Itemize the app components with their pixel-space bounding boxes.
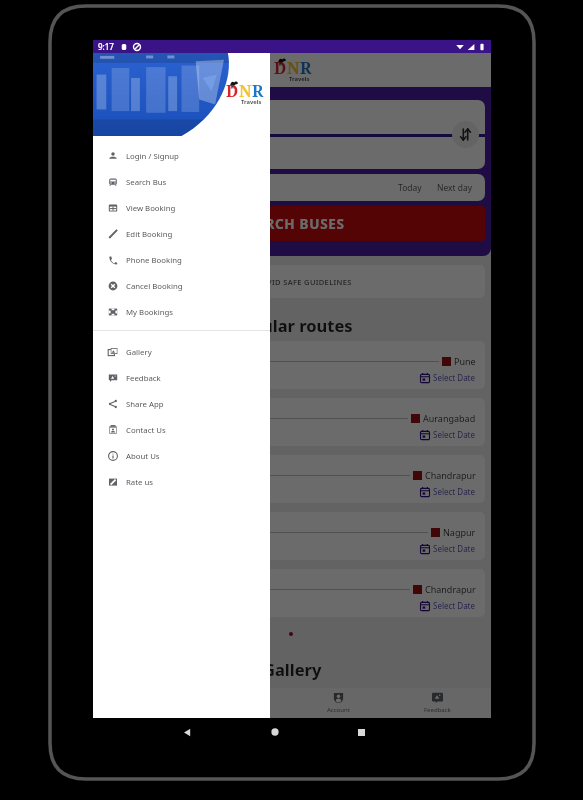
button[interactable]: About Us [93,443,270,469]
staticText: Gallery [126,347,152,358]
staticText: Chandrapur [425,583,476,595]
button[interactable]: Rate us [93,469,270,495]
staticText: Contact Us [126,425,166,436]
button[interactable]: Contact Us [93,417,270,443]
button[interactable]: Nanded [99,398,485,446]
button[interactable]: Back [183,728,192,737]
staticText: To [111,146,122,160]
staticText: Popular routes [231,314,353,336]
staticText: COVID SAFE GUIDELINES [256,277,352,287]
staticText: N [239,80,252,102]
button[interactable]: View Booking [93,195,270,221]
staticText: Phone Booking [126,255,182,266]
staticText: Account [327,706,350,714]
staticText: Edit Booking [126,229,173,240]
button[interactable]: Nanded [99,455,485,503]
button[interactable]: My Bookings [93,299,270,325]
staticText: Login / Signup [126,151,179,162]
button[interactable]: Swap source and destination [452,121,479,148]
staticText: Chandrapur [425,469,476,481]
button[interactable]: Gallery [93,339,270,365]
staticText: Aurangabad [423,412,476,424]
button[interactable]: Login / Signup [93,143,270,169]
staticText: Select Date [433,600,476,611]
staticText: Feedback [424,706,451,714]
staticText: Nanded [121,469,155,481]
button[interactable]: Share App [93,391,270,417]
staticText: SEARCH BUSES [239,215,345,233]
staticText: Travels [289,75,310,83]
staticText: Next day [437,182,473,194]
button[interactable] [93,53,491,718]
staticText: Select Date [433,372,476,383]
button[interactable]: SEARCH BUSES [99,206,485,241]
button[interactable]: Nanded [99,512,485,560]
button[interactable]: Nanded [99,341,485,389]
staticText: Cancel Booking [126,281,183,292]
staticText: D [274,57,287,79]
button[interactable]: Phone Booking [93,247,270,273]
staticText: Gallery [263,658,322,680]
button[interactable]: Edit Booking [93,221,270,247]
staticText: Nanded [121,355,155,367]
staticText: Select Date [433,486,476,497]
staticText: Travels [241,98,262,106]
staticText: Feedback [126,373,161,384]
button[interactable]: Home [271,728,279,736]
staticText: Rate us [126,477,154,488]
staticText: Search Bus [126,177,167,188]
staticText: R [252,80,262,102]
button[interactable]: Offers [192,688,292,718]
staticText: R [300,57,310,79]
button[interactable]: COVID SAFE GUIDELINES [99,265,485,298]
button[interactable]: Search Bus [93,169,270,195]
staticText: View Booking [126,203,176,214]
button[interactable]: Today [394,179,426,197]
staticText: D [226,80,239,102]
staticText: Select Date [433,543,476,554]
staticText: Pune [454,355,476,367]
button[interactable]: Feedback [384,688,491,718]
staticText: Today [398,182,422,194]
button[interactable]: Feedback [93,365,270,391]
staticText: About Us [126,451,160,462]
staticText: My Bookings [126,307,174,318]
button[interactable]: Next day [433,179,477,197]
staticText: N [287,57,300,79]
staticText: 9:17 [98,41,114,52]
button[interactable]: Cancel Booking [93,273,270,299]
staticText: Nagpur [443,526,476,538]
button[interactable]: Account [292,688,384,718]
staticText: Select Date [433,429,476,440]
staticText: Share App [126,399,164,410]
staticText: From [111,110,136,124]
button[interactable]: Nanded [99,569,485,617]
